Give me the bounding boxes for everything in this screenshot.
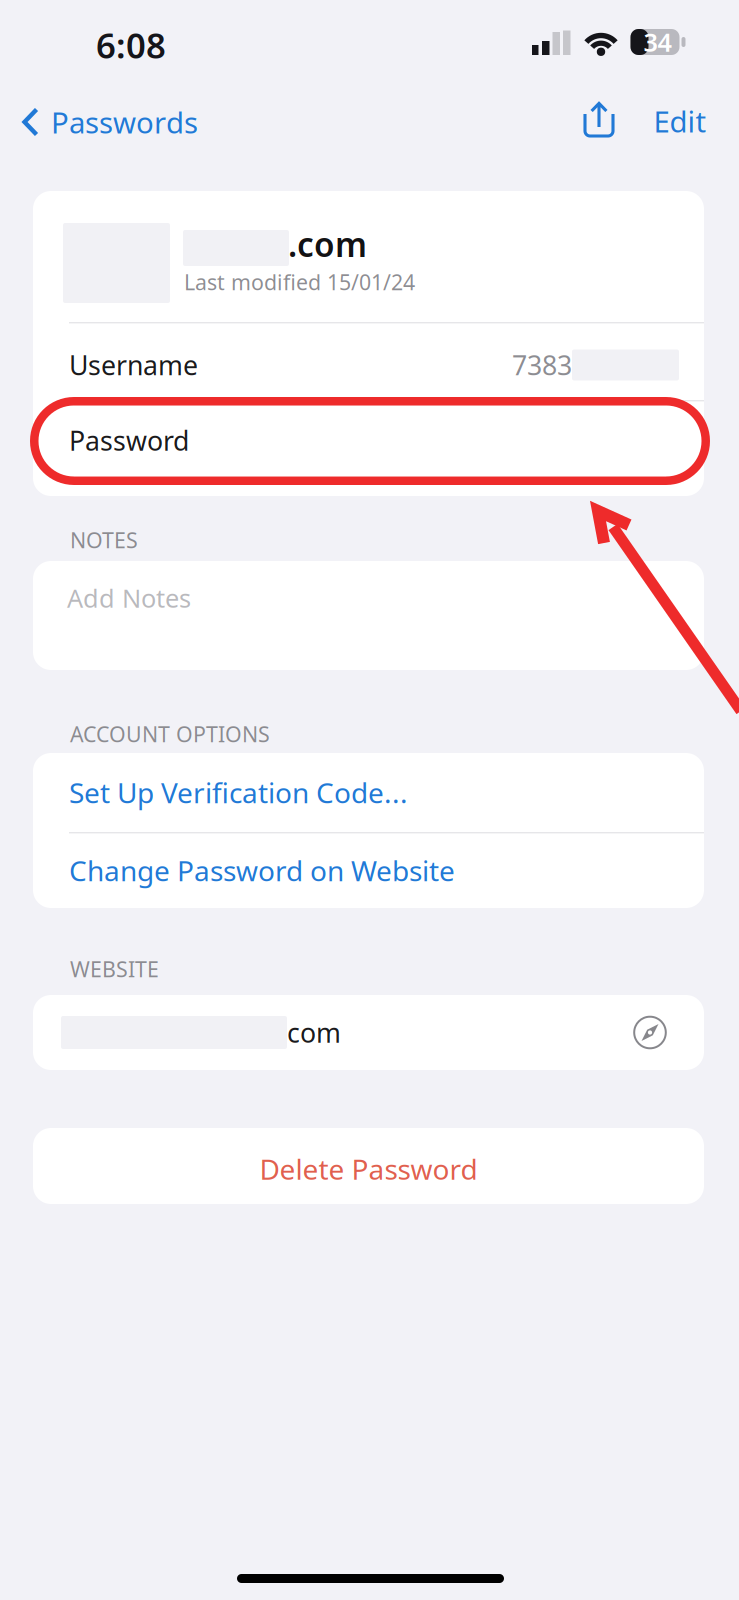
staticText: com xyxy=(287,1015,341,1050)
button[interactable]: Passwords xyxy=(0,0,739,1600)
button[interactable]: Share xyxy=(0,0,739,1600)
button[interactable]: Delete Password xyxy=(0,0,739,1600)
button[interactable]: Change Password on Website xyxy=(0,0,739,1600)
button[interactable]: Add Notes xyxy=(0,0,739,1600)
staticText: .com xyxy=(288,222,367,266)
staticText: WEBSITE xyxy=(70,955,159,983)
button[interactable]: Edit xyxy=(0,0,739,1600)
staticText: Last modified 15/01/24 xyxy=(184,268,415,296)
staticText: 7383 xyxy=(512,347,572,383)
button[interactable]: Set Up Verification Code... xyxy=(0,0,739,1600)
staticText: Add Notes xyxy=(67,581,191,615)
button[interactable]: com xyxy=(0,0,739,1600)
staticText: Delete Password xyxy=(259,1150,477,1188)
button[interactable]: Username xyxy=(0,0,739,1600)
staticText: Set Up Verification Code... xyxy=(69,774,408,811)
staticText: 6:08 xyxy=(96,22,166,68)
staticText: ACCOUNT OPTIONS xyxy=(70,720,270,748)
staticText: Passwords xyxy=(51,102,198,141)
staticText: Username xyxy=(69,347,198,383)
staticText: NOTES xyxy=(70,526,138,554)
staticText: Edit xyxy=(653,101,706,140)
button[interactable]: Password xyxy=(0,0,739,1600)
staticText: Change Password on Website xyxy=(69,852,455,889)
staticText: Password xyxy=(69,423,189,458)
staticText: 34 xyxy=(643,25,671,59)
